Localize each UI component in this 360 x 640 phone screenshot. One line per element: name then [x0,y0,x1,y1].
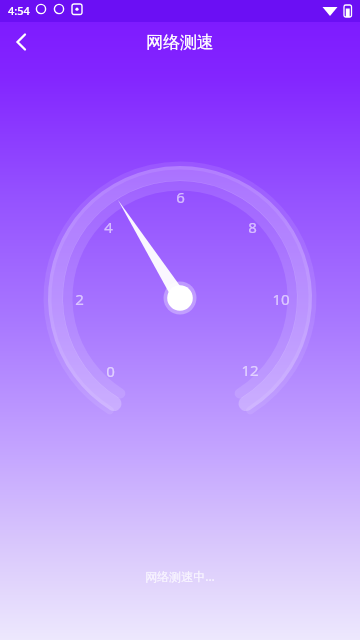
staticText: 0 [106,361,115,381]
button[interactable]: Back [0,22,46,62]
staticText: 4 [104,217,113,237]
staticText: 2 [75,289,84,309]
staticText: 6 [176,187,185,207]
staticText: 8 [248,217,257,237]
staticText: 网络测速中... [145,568,215,584]
staticText: 网络测速 [146,32,214,53]
staticText: 10 [272,289,290,309]
staticText: 4:54 [8,3,30,18]
staticText: 12 [241,360,259,380]
